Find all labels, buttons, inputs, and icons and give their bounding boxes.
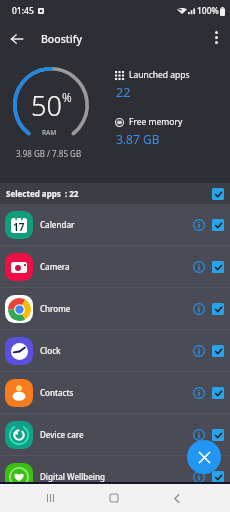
staticText: 100% [197,5,219,17]
staticText: 17 [13,220,25,233]
staticText: RAM [42,128,57,137]
button[interactable]: Select [212,219,224,231]
button[interactable]: App info [190,384,208,402]
button[interactable]: App info [190,300,208,318]
staticText: Calendar [40,219,75,230]
button[interactable]: Select [212,471,224,483]
button[interactable]: Select [212,303,224,315]
staticText: 22 [116,84,131,101]
staticText: Device care [40,429,84,440]
staticText: Contacts [40,387,74,398]
button[interactable]: App info [190,258,208,276]
button[interactable]: Select [212,345,224,357]
button[interactable]: Select [212,429,224,441]
button[interactable]: 17 [0,204,230,245]
button[interactable]: Digital Wellbeing [0,456,230,497]
staticText: Clock [40,345,61,356]
button[interactable]: Select [212,387,224,399]
staticText: % [62,89,72,105]
button[interactable]: Close [187,440,221,474]
button[interactable]: Clock [0,330,230,371]
staticText: Free memory [129,116,183,128]
button[interactable]: Select [212,188,224,200]
staticText: Launched apps [129,69,190,81]
staticText: 3.87 GB [116,131,160,147]
staticText: Chrome [40,303,71,314]
button[interactable]: Device care [0,414,230,455]
button[interactable]: App info [190,426,208,444]
staticText: 3.98 GB / 7.85 GB [16,148,82,159]
button[interactable]: Back [159,484,194,512]
staticText: 01:45 [12,5,34,17]
button[interactable]: Recents [33,484,68,512]
button[interactable]: Contacts [0,372,230,413]
button[interactable]: More options [202,22,230,56]
button[interactable]: App info [190,468,208,486]
button[interactable]: Select [212,261,224,273]
staticText: Boostify [41,32,82,46]
staticText: Selected apps : 22 [6,188,79,199]
staticText: Digital Wellbeing [40,471,105,482]
button[interactable]: App info [190,342,208,360]
button[interactable]: Chrome [0,288,230,329]
button[interactable]: Home [96,484,131,512]
staticText: Camera [40,261,70,272]
staticText: 50 [31,87,62,124]
button[interactable]: Back [0,22,34,56]
button[interactable]: Camera [0,246,230,287]
button[interactable]: App info [190,216,208,234]
